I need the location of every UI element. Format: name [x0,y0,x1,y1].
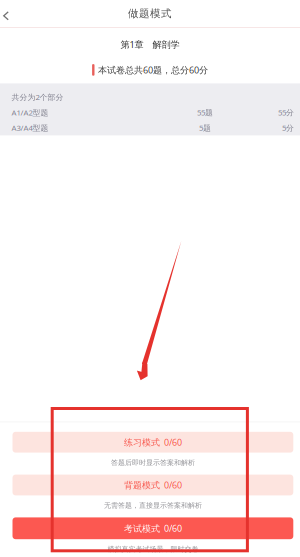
staticText: 5分 [282,122,294,133]
staticText: 55分 [278,107,294,118]
staticText: 本试卷总共60题，总分60分 [98,64,208,76]
staticText: 背题模式 0/60 [124,479,182,491]
staticText: 模拟真实考试场景，限时交卷 [107,545,198,554]
staticText: 练习模式 0/60 [124,436,182,448]
staticText: 答题后即时显示答案和解析 [111,458,195,467]
button[interactable]: 练习模式 0/60 [12,432,293,473]
staticText: 第1章 解剖学 [120,38,179,51]
staticText: A3/A4型题 [11,122,48,133]
staticText: 无需答题，直接显示答案和解析 [104,501,202,510]
staticText: 5题 [199,122,211,133]
staticText: 做题模式 [128,7,172,20]
staticText: 55题 [197,107,213,118]
staticText: 考试模式 0/60 [124,522,182,534]
button[interactable]: 考试模式 0/60 [12,517,293,557]
button[interactable]: Back [0,0,17,27]
button[interactable]: 背题模式 0/60 [12,475,293,515]
staticText: 共分为2个部分 [11,92,63,102]
staticText: A1/A2型题 [11,107,48,118]
